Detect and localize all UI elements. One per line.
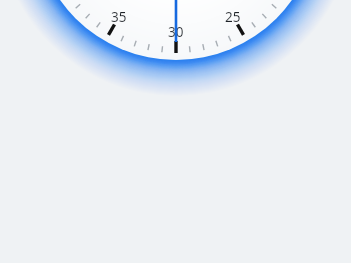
button[interactable]: Stopwatch dial <box>0 0 351 263</box>
